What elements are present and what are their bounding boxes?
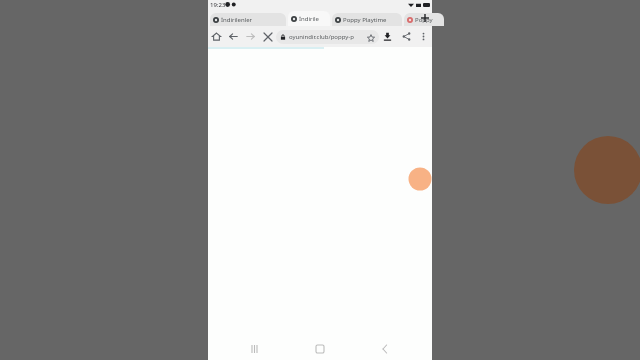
button[interactable]: Stop loading	[259, 26, 276, 47]
staticText: 19:23	[210, 1, 226, 9]
staticText: oyunindir.club/poppy-p	[289, 33, 364, 41]
button[interactable]: Back	[225, 26, 242, 47]
button[interactable]: Downloads	[379, 26, 396, 47]
button[interactable]: Bookmark	[366, 33, 375, 42]
button[interactable]: Recent apps	[237, 337, 273, 360]
button[interactable]: Share	[398, 26, 415, 47]
staticText: İndirilenler	[221, 16, 253, 24]
button[interactable]: Poppy Playtime	[332, 13, 402, 26]
button[interactable]: İndirilenler	[210, 13, 286, 26]
button[interactable]: Forward	[242, 26, 259, 47]
button[interactable]: Home	[208, 26, 225, 47]
button[interactable]: Poppy Pla	[404, 13, 444, 26]
button[interactable]: oyunindir.club/poppy-p	[276, 30, 379, 44]
staticText: Poppy Playtime	[343, 16, 387, 24]
button[interactable]: New tab	[418, 11, 432, 25]
button[interactable]: Back	[367, 337, 403, 360]
button[interactable]: More options	[415, 26, 432, 47]
staticText: Poppy Pla	[415, 16, 441, 24]
button[interactable]: İndirile	[288, 11, 330, 26]
button[interactable]: Home	[302, 337, 338, 360]
staticText: İndirile	[299, 15, 319, 23]
